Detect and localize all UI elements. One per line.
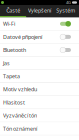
staticText: Systém [56,7,75,14]
staticText: Wi-Fi [3,20,15,27]
staticText: Motiv vzhledu [3,86,37,93]
staticText: Tapeta [3,73,20,80]
button[interactable]: Datové připojení [0,31,79,44]
button[interactable]: Wi-Fi [0,17,79,31]
staticText: Jas [3,60,10,67]
staticText: Datové připojení [3,33,42,40]
staticText: Bluetooth [3,46,26,54]
button[interactable]: Tapeta [0,70,79,83]
staticText: Tón oznámení [3,125,37,132]
button[interactable]: Hlasitost [0,96,79,109]
staticText: Časté [6,7,20,14]
button[interactable]: Tón oznámení [0,122,79,135]
button[interactable]: Vyzváněcí tón [0,109,79,122]
button[interactable]: Časté [0,5,26,16]
staticText: Vylepšení [28,7,51,14]
button[interactable]: Systém [53,5,79,16]
staticText: 4G [66,0,71,5]
button[interactable]: Vylepšení [26,5,53,16]
staticText: Hlasitost [3,99,25,106]
button[interactable]: Motiv vzhledu [0,83,79,96]
staticText: Vyzváněcí tón [3,112,37,119]
button[interactable]: Jas [0,57,79,70]
button[interactable]: Bluetooth [0,44,79,57]
